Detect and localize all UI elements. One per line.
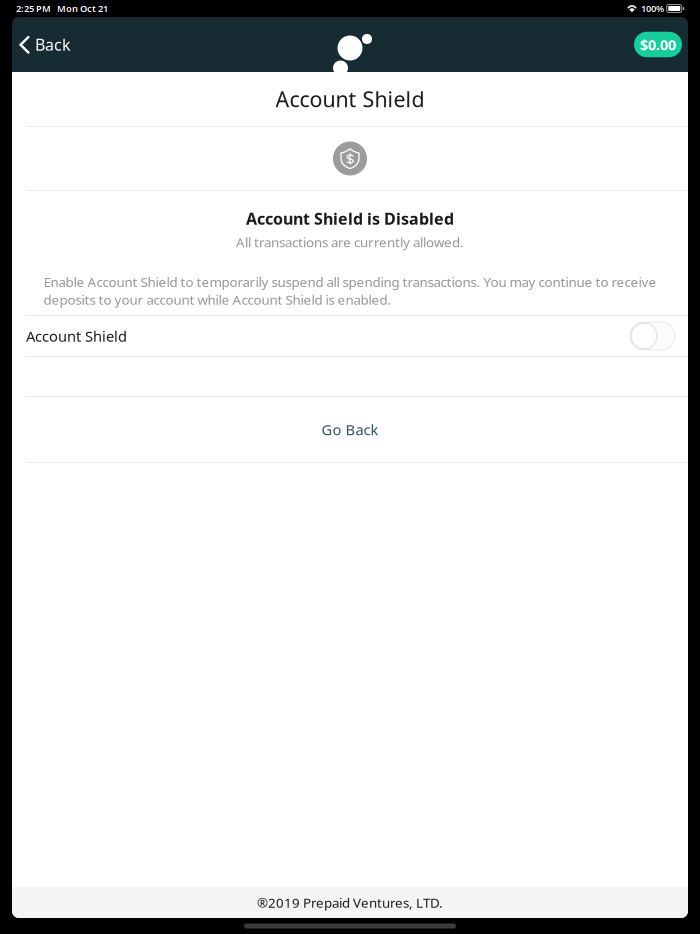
button[interactable]: Account Shield toggle	[630, 322, 675, 350]
button[interactable]: Back	[19, 24, 77, 65]
staticText: All transactions are currently allowed.	[236, 233, 464, 251]
staticText: Account Shield	[26, 326, 127, 346]
staticText: $0.00	[640, 35, 676, 54]
staticText: Mon Oct 21	[57, 2, 108, 15]
staticText: 2:25 PM	[16, 2, 51, 15]
staticText: Back	[35, 34, 71, 55]
staticText: Account Shield	[275, 85, 424, 113]
button[interactable]: Go Back	[12, 397, 688, 462]
staticText: Account Shield is Disabled	[246, 208, 454, 229]
staticText: Go Back	[321, 420, 378, 439]
staticText: Enable Account Shield to temporarily sus…	[43, 273, 656, 308]
staticText: 100%	[641, 2, 664, 15]
button[interactable]: $0.00	[634, 32, 682, 57]
staticText: ®2019 Prepaid Ventures, LTD.	[257, 894, 443, 911]
